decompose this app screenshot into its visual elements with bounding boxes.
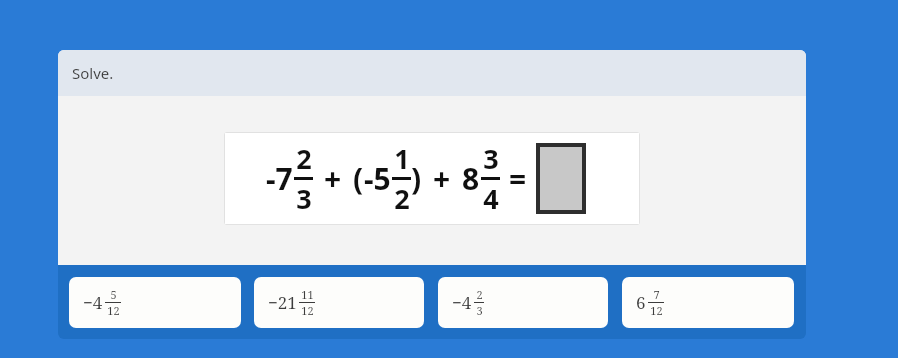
staticText: 8 [462,158,480,199]
staticText: 11 [301,287,314,302]
staticText: 6 [636,291,646,314]
staticText: -7 [266,158,293,199]
staticText: 2 [476,287,483,302]
staticText: ( [353,158,364,199]
staticText: 3 [296,180,312,217]
staticText: + [433,158,451,199]
button[interactable]: −4 [69,277,241,328]
button[interactable] [538,145,584,212]
staticText: 2 [296,140,312,177]
staticText: ) [411,158,422,199]
staticText: 12 [301,303,314,318]
staticText: −4 [83,291,103,314]
staticText: + [324,158,342,199]
staticText: 2 [394,180,410,217]
staticText: 5 [110,287,117,302]
button[interactable]: −21 [254,277,424,328]
button[interactable]: −4 [438,277,608,328]
staticText: = [509,158,527,199]
staticText: 12 [650,303,663,318]
staticText: Solve. [72,63,114,83]
staticText: 12 [107,303,120,318]
staticText: 4 [483,180,499,217]
staticText: −21 [268,291,297,314]
staticText: 3 [476,303,483,318]
staticText: −4 [452,291,472,314]
button[interactable]: 6 [622,277,794,328]
staticText: -5 [364,158,391,199]
staticText: 7 [653,287,660,302]
staticText: 1 [394,140,410,177]
staticText: 3 [483,140,499,177]
